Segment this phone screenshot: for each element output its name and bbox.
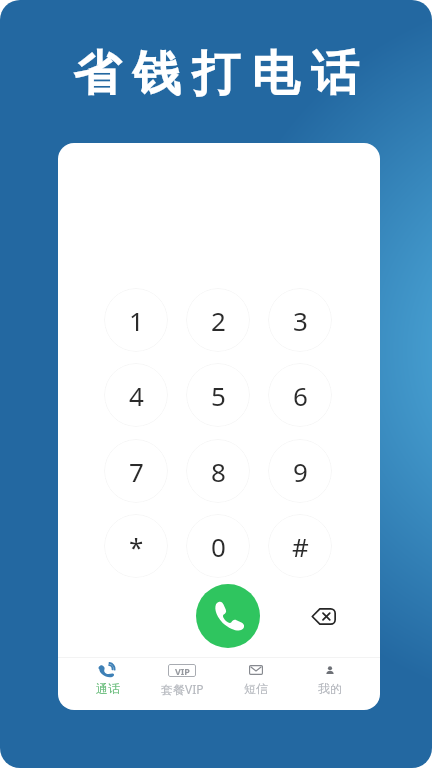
staticText: 6 bbox=[293, 378, 308, 413]
staticText: 5 bbox=[211, 378, 226, 413]
button[interactable]: # bbox=[268, 514, 332, 578]
button[interactable]: * bbox=[104, 514, 168, 578]
button[interactable]: 6 bbox=[268, 363, 332, 427]
staticText: * bbox=[129, 529, 144, 564]
button[interactable]: 短信 bbox=[223, 653, 289, 709]
button[interactable]: 4 bbox=[104, 363, 168, 427]
button[interactable]: 3 bbox=[268, 288, 332, 352]
button[interactable]: 2 bbox=[186, 288, 250, 352]
staticText: 1 bbox=[129, 303, 144, 338]
staticText: 4 bbox=[129, 378, 144, 413]
button[interactable]: Call bbox=[196, 584, 260, 648]
button[interactable]: Backspace bbox=[299, 594, 347, 638]
button[interactable]: VIP bbox=[149, 653, 215, 709]
button[interactable]: 0 bbox=[186, 514, 250, 578]
button[interactable]: 1 bbox=[104, 288, 168, 352]
staticText: 通话 bbox=[96, 681, 120, 696]
button[interactable]: 7 bbox=[104, 439, 168, 503]
staticText: 省钱打电话 bbox=[73, 44, 371, 104]
staticText: 3 bbox=[293, 303, 308, 338]
button[interactable]: 9 bbox=[268, 439, 332, 503]
button[interactable]: 通话 bbox=[75, 653, 141, 709]
staticText: 套餐VIP bbox=[161, 681, 204, 697]
staticText: 9 bbox=[293, 454, 308, 489]
staticText: # bbox=[292, 529, 309, 564]
staticText: 7 bbox=[129, 454, 144, 489]
staticText: VIP bbox=[175, 665, 190, 677]
button[interactable]: 8 bbox=[186, 439, 250, 503]
staticText: 短信 bbox=[244, 681, 268, 696]
staticText: 8 bbox=[211, 454, 226, 489]
staticText: 0 bbox=[211, 529, 226, 564]
staticText: 我的 bbox=[318, 681, 342, 696]
staticText: 2 bbox=[211, 303, 226, 338]
button[interactable]: 我的 bbox=[297, 653, 363, 709]
button[interactable]: 5 bbox=[186, 363, 250, 427]
